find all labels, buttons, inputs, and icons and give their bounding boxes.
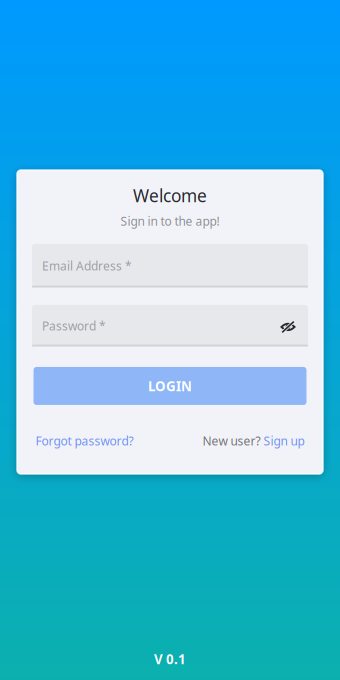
staticText: Sign up bbox=[263, 433, 304, 449]
button[interactable]: Forgot password? bbox=[35, 433, 133, 449]
staticText: Email Address * bbox=[42, 258, 132, 274]
staticText: Welcome bbox=[133, 184, 207, 207]
button[interactable]: LOGIN bbox=[33, 367, 306, 405]
staticText: V 0.1 bbox=[154, 650, 186, 668]
staticText: Password * bbox=[42, 318, 106, 334]
staticText: Forgot password? bbox=[35, 433, 133, 449]
staticText: New user? bbox=[202, 433, 260, 449]
button[interactable]: Show password bbox=[274, 313, 298, 337]
staticText: LOGIN bbox=[148, 377, 192, 395]
staticText: Sign in to the app! bbox=[120, 213, 219, 229]
button[interactable]: New user? bbox=[202, 433, 304, 449]
